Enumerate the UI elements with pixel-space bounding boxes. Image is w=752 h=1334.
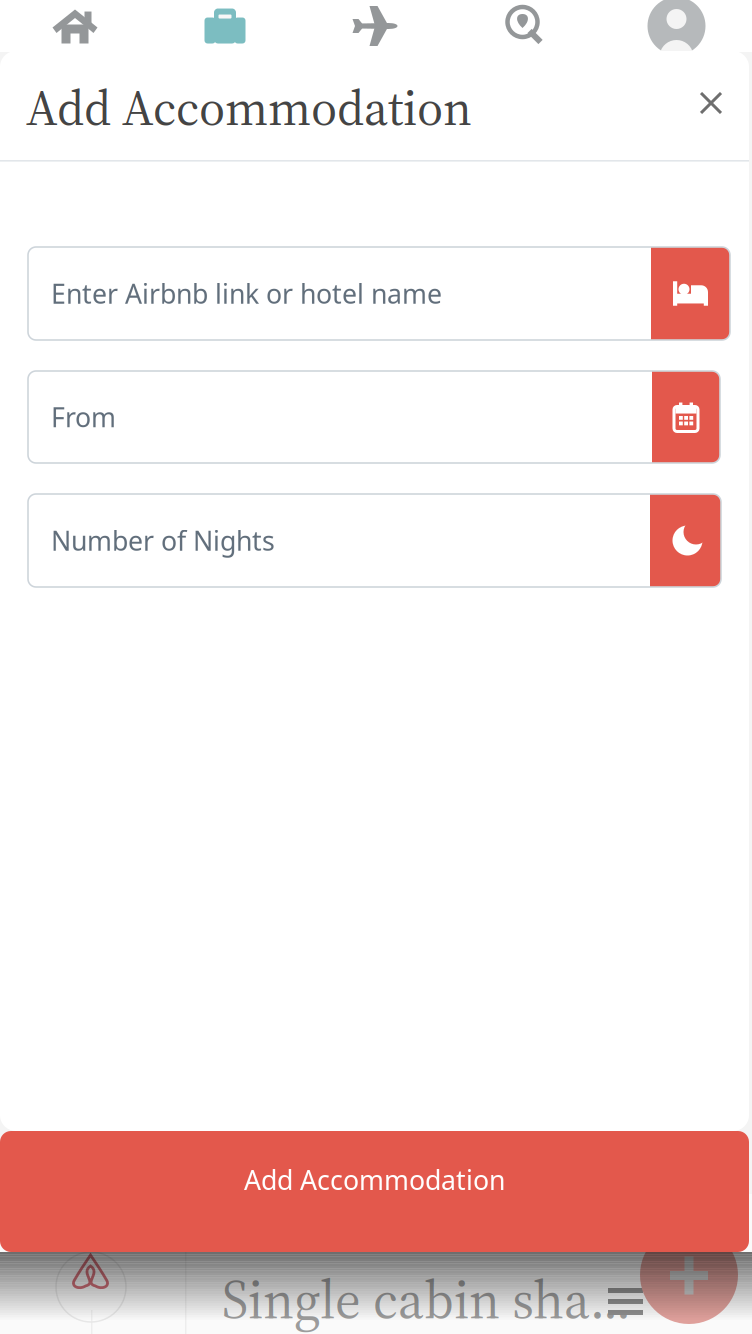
- button[interactable]: Home: [0, 0, 150, 52]
- button[interactable]: Number of Nights: [28, 494, 721, 587]
- staticText: Add Accommodation: [26, 74, 472, 142]
- staticText: From: [51, 399, 116, 435]
- button[interactable]: Trips: [150, 0, 300, 52]
- button[interactable]: From: [28, 371, 720, 463]
- staticText: Single cabin sha...: [222, 1263, 631, 1334]
- button[interactable]: Add Accommodation: [0, 1131, 749, 1252]
- button[interactable]: Enter Airbnb link or hotel name: [28, 247, 730, 340]
- staticText: Add Accommodation: [244, 1162, 505, 1197]
- staticText: Number of Nights: [51, 523, 275, 558]
- button[interactable]: Flights: [300, 0, 451, 52]
- button[interactable]: Explore: [451, 0, 601, 52]
- button[interactable]: Profile: [601, 0, 752, 52]
- staticText: Enter Airbnb link or hotel name: [51, 276, 442, 311]
- button[interactable]: Close: [701, 93, 752, 149]
